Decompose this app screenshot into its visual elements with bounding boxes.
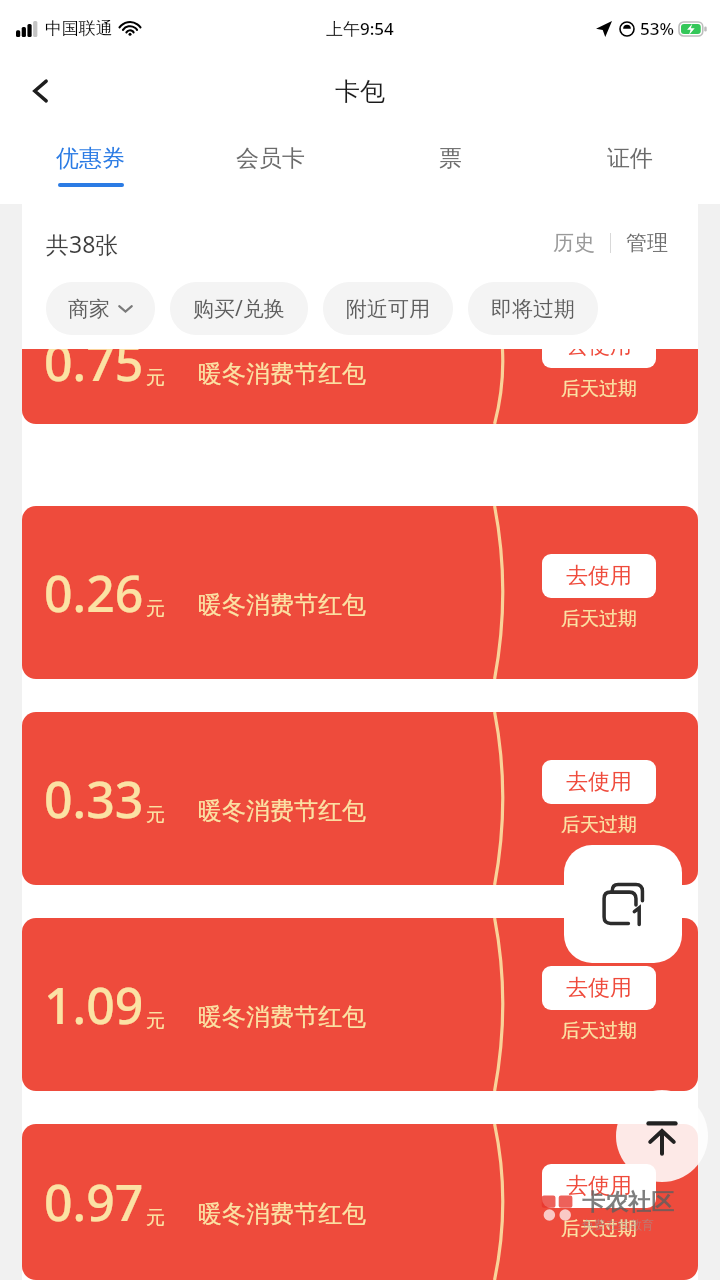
staticText: 暖冬消费节红包 [198,590,366,620]
staticText: 后天过期 [561,813,637,837]
button[interactable]: 0.75 [22,349,698,424]
staticText: 证件 [607,144,653,173]
staticText: 管理 [626,230,668,256]
button[interactable]: 去使用 [542,349,656,368]
staticText: 0.26 [44,559,144,627]
staticText: 上午9:54 [326,17,394,40]
staticText: 0.75 [44,349,144,396]
button[interactable]: 去使用 [542,1164,656,1208]
staticText: 中国联通 [45,18,113,39]
button[interactable]: 0.97 [22,1124,698,1280]
button[interactable]: 票 [360,126,540,204]
staticText: 1.09 [44,971,144,1039]
staticText: 元 [146,597,165,621]
staticText: 共38张 [46,228,119,259]
staticText: 免费在线教育 [582,1217,654,1232]
staticText: 商家 [68,296,110,322]
staticText: 0.97 [44,1168,144,1236]
button[interactable]: Scroll to top [616,1090,708,1182]
staticText: 元 [146,803,165,827]
staticText: 去使用 [566,1172,632,1200]
button[interactable]: 0.33 [22,712,698,885]
staticText: 元 [146,1206,165,1230]
staticText: 后天过期 [561,607,637,631]
button[interactable]: 去使用 [542,966,656,1010]
staticText: 暖冬消费节红包 [198,796,366,826]
staticText: 53% [640,17,674,40]
staticText: 暖冬消费节红包 [198,1002,366,1032]
staticText: 优惠券 [56,144,125,173]
button[interactable]: 去使用 [542,554,656,598]
staticText: 暖冬消费节红包 [198,1199,366,1229]
staticText: 卡包 [335,76,385,107]
staticText: 即将过期 [491,296,575,322]
button[interactable]: 即将过期 [468,282,598,335]
button[interactable]: Back [14,64,68,118]
button[interactable]: Tabs [564,845,682,963]
staticText: 元 [146,1009,165,1033]
button[interactable]: 管理 [620,224,674,262]
staticText: 附近可用 [346,296,430,322]
staticText: 票 [439,144,462,173]
staticText: 暖冬消费节红包 [198,359,366,389]
button[interactable]: 历史 [547,224,601,262]
staticText: 去使用 [566,768,632,796]
button[interactable]: 1.09 [22,918,698,1091]
staticText: 0.33 [44,765,144,833]
staticText: 后天过期 [561,1019,637,1043]
button[interactable]: 0.26 [22,506,698,679]
staticText: 卡农社区 [582,1188,674,1217]
staticText: 后天过期 [561,1217,637,1241]
button[interactable]: 购买/兑换 [170,282,308,335]
staticText: 元 [146,366,165,390]
staticText: 后天过期 [561,377,637,401]
button[interactable]: 附近可用 [323,282,453,335]
staticText: 去使用 [566,974,632,1002]
button[interactable]: 会员卡 [180,126,360,204]
button[interactable]: 商家 [46,282,155,335]
staticText: 历史 [553,230,595,256]
button[interactable]: 优惠券 [0,126,180,204]
button[interactable]: 去使用 [542,760,656,804]
staticText: 去使用 [566,562,632,590]
staticText: 购买/兑换 [193,294,285,323]
staticText: 会员卡 [236,144,305,173]
staticText: 去使用 [566,349,632,360]
button[interactable]: 证件 [540,126,720,204]
